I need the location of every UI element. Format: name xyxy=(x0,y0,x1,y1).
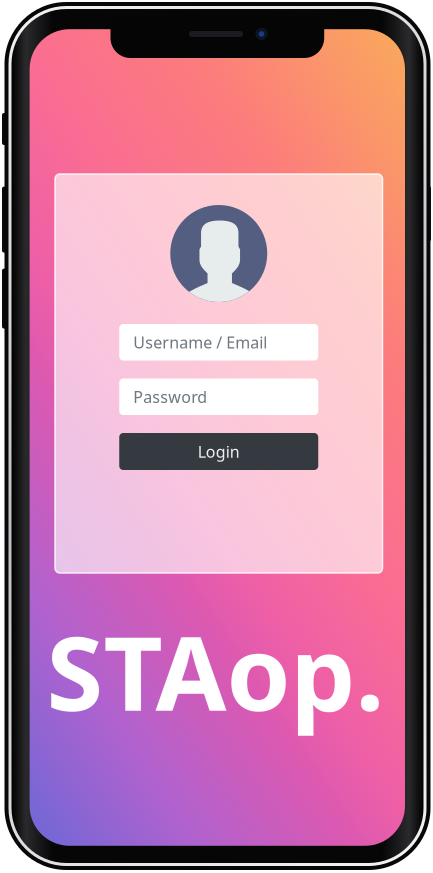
button[interactable]: Login xyxy=(119,433,318,470)
button[interactable]: Username / Email xyxy=(119,324,318,360)
staticText: Login xyxy=(198,441,240,462)
staticText: Username / Email xyxy=(133,332,267,353)
staticText: STAop. xyxy=(46,603,384,739)
staticText: Password xyxy=(133,386,207,407)
button[interactable]: Password xyxy=(119,378,318,415)
